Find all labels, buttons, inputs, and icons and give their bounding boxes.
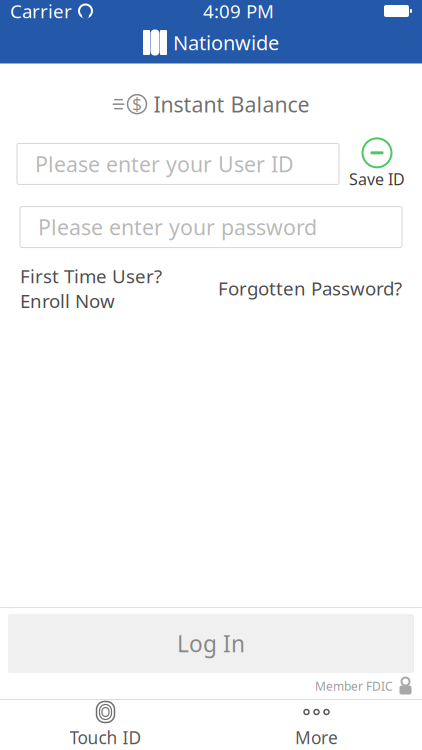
button[interactable]: Touch ID	[0, 700, 211, 750]
button[interactable]: $	[102, 84, 319, 124]
staticText: $	[132, 93, 142, 116]
staticText: Nationwide	[173, 29, 279, 56]
staticText: Please enter your password	[38, 213, 317, 241]
staticText: Please enter your User ID	[35, 150, 294, 178]
button[interactable]: More	[211, 700, 422, 750]
button[interactable]: Please enter your password	[20, 207, 402, 248]
staticText: Member FDIC	[315, 678, 393, 694]
staticText: More	[295, 726, 338, 749]
staticText: First Time User? Enroll Now	[20, 264, 162, 313]
staticText: Log In	[177, 628, 245, 659]
staticText: Save ID	[349, 168, 405, 189]
button[interactable]: Forgotten Password?	[218, 276, 402, 301]
button[interactable]: First Time User? Enroll Now	[20, 264, 162, 313]
button[interactable]: Log In	[8, 614, 414, 673]
button[interactable]: Please enter your User ID	[17, 143, 339, 184]
staticText: Instant Balance	[153, 90, 309, 118]
staticText: Carrier	[10, 0, 72, 23]
button[interactable]: Save ID	[349, 138, 405, 189]
staticText: Touch ID	[69, 726, 141, 749]
staticText: 4:09 PM	[203, 0, 274, 23]
staticText: Forgotten Password?	[218, 276, 402, 301]
